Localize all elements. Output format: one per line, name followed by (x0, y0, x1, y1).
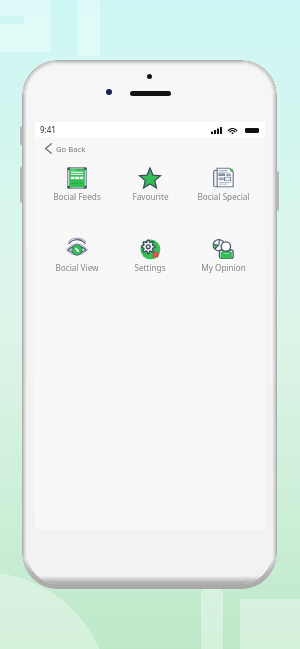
button[interactable]: Go Back (45, 143, 86, 154)
button[interactable]: My Opinion (188, 237, 258, 273)
button[interactable]: Bocial Feeds (42, 166, 112, 202)
staticText: Favourite (132, 191, 169, 202)
staticText: My Opinion (201, 262, 246, 273)
button[interactable]: Favourite (115, 166, 185, 202)
button[interactable]: Bocial View (42, 237, 112, 273)
staticText: Bocial View (55, 262, 99, 273)
staticText: Bocial Special (197, 191, 250, 202)
staticText: Settings (134, 262, 166, 273)
staticText: 9:41 (40, 124, 56, 135)
button[interactable]: Settings (115, 237, 185, 273)
staticText: Bocial Feeds (53, 191, 101, 202)
staticText: Go Back (56, 144, 86, 154)
button[interactable]: Bocial Special (188, 166, 258, 202)
